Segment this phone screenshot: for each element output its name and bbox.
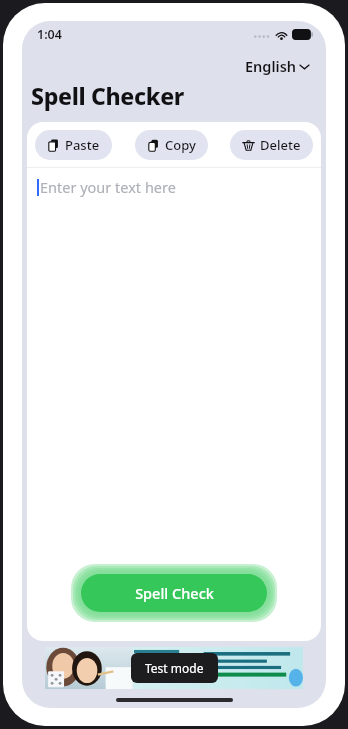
button[interactable]: Paste: [35, 130, 112, 160]
staticText: English: [245, 56, 297, 76]
staticText: Spell Checker: [31, 80, 185, 111]
button[interactable]: Delete: [230, 130, 313, 160]
staticText: Test mode: [145, 660, 204, 676]
staticText: Paste: [65, 136, 100, 154]
staticText: 1:04: [37, 26, 62, 43]
staticText: Copy: [165, 136, 196, 154]
button[interactable]: English: [241, 53, 315, 79]
button[interactable]: Copy: [135, 130, 208, 160]
button[interactable]: Spell Check: [81, 574, 267, 612]
staticText: Delete: [260, 136, 301, 154]
button[interactable]: Advertisement: [45, 647, 303, 689]
staticText: Enter your text here: [40, 177, 176, 197]
staticText: Spell Check: [135, 583, 214, 603]
